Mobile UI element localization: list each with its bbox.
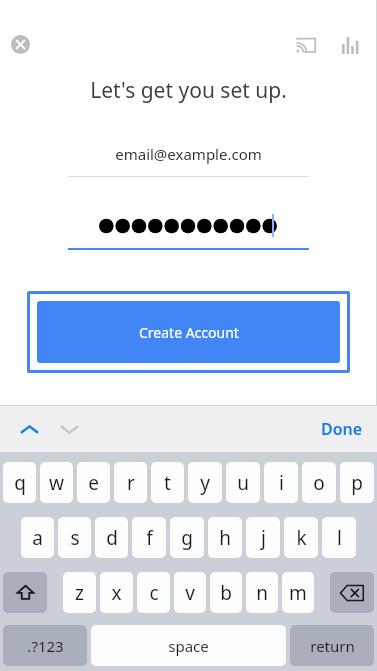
button[interactable]: v — [174, 572, 206, 613]
staticText: s — [70, 525, 80, 551]
staticText: f — [146, 525, 153, 551]
button[interactable]: r — [114, 462, 147, 503]
button[interactable]: space — [91, 625, 286, 666]
button[interactable]: f — [132, 517, 166, 558]
button[interactable]: Next field — [49, 406, 89, 452]
staticText: e — [88, 470, 99, 496]
button[interactable]: q — [3, 462, 36, 503]
button[interactable]: Shift — [3, 572, 47, 613]
staticText: p — [351, 470, 363, 496]
staticText: return — [310, 636, 355, 656]
button[interactable]: z — [63, 572, 96, 613]
button[interactable]: c — [137, 572, 170, 613]
button[interactable]: Statistics — [336, 32, 362, 58]
button[interactable]: x — [100, 572, 133, 613]
staticText: g — [181, 525, 193, 551]
button[interactable]: Previous field — [9, 406, 49, 452]
button[interactable]: u — [226, 462, 260, 503]
staticText: j — [261, 525, 266, 551]
button[interactable]: Done — [321, 406, 363, 452]
button[interactable]: n — [246, 572, 278, 613]
button[interactable]: p — [340, 462, 374, 503]
button[interactable]: a — [21, 517, 54, 558]
staticText: a — [32, 525, 43, 551]
staticText: Done — [321, 418, 363, 440]
staticText: z — [75, 580, 84, 606]
button[interactable]: y — [188, 462, 222, 503]
staticText: r — [127, 470, 135, 496]
button[interactable]: g — [170, 517, 204, 558]
button[interactable]: m — [282, 572, 314, 613]
button[interactable]: e — [77, 462, 110, 503]
button[interactable]: t — [151, 462, 184, 503]
staticText: email@example.com — [68, 144, 309, 164]
staticText: u — [237, 470, 249, 496]
button[interactable]: Close — [7, 31, 33, 57]
staticText: m — [289, 580, 307, 606]
button[interactable]: Backspace — [330, 572, 374, 613]
button[interactable]: s — [58, 517, 91, 558]
staticText: x — [111, 580, 122, 606]
button[interactable]: i — [264, 462, 298, 503]
button[interactable]: Cast — [293, 32, 319, 58]
button[interactable]: return — [290, 625, 374, 666]
staticText: d — [106, 525, 118, 551]
button[interactable]: b — [210, 572, 242, 613]
button[interactable]: Create Account — [37, 301, 340, 363]
button[interactable]: k — [284, 517, 318, 558]
staticText: q — [14, 470, 26, 496]
staticText: l — [337, 525, 342, 551]
staticText: b — [220, 580, 232, 606]
staticText: o — [313, 470, 325, 496]
staticText: v — [185, 580, 195, 606]
button[interactable]: l — [322, 517, 356, 558]
staticText: Create Account — [139, 323, 239, 342]
button[interactable]: w — [40, 462, 73, 503]
button[interactable]: h — [208, 517, 242, 558]
staticText: k — [296, 525, 307, 551]
staticText: y — [200, 470, 210, 496]
staticText: .?123 — [27, 636, 64, 656]
staticText: space — [168, 636, 209, 656]
staticText: Let's get you set up. — [0, 76, 377, 105]
button[interactable]: .?123 — [3, 625, 87, 666]
staticText: n — [256, 580, 268, 606]
button[interactable]: j — [246, 517, 280, 558]
staticText: c — [149, 580, 159, 606]
staticText: t — [164, 470, 171, 496]
staticText: h — [219, 525, 231, 551]
staticText: w — [49, 470, 64, 496]
button[interactable]: o — [302, 462, 336, 503]
button[interactable]: d — [95, 517, 128, 558]
staticText: i — [279, 470, 284, 496]
